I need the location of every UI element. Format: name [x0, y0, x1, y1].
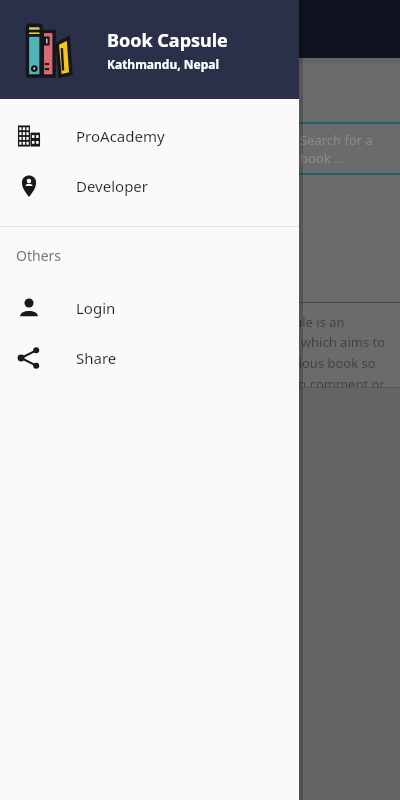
- other: ProAcademy: [17, 124, 41, 148]
- other: Share: [17, 346, 41, 370]
- staticText: Share: [76, 348, 117, 368]
- button[interactable]: Share: [0, 333, 299, 383]
- button[interactable]: ProAcademy: [0, 111, 299, 161]
- staticText: Developer: [76, 176, 149, 196]
- staticText: Search for a book …: [300, 131, 400, 167]
- staticText: Book Capsule: [107, 28, 228, 53]
- button[interactable]: Login: [0, 283, 299, 333]
- other: Developer: [17, 174, 41, 198]
- button[interactable]: Developer: [0, 161, 299, 211]
- staticText: Book Capsule is an application which aim…: [230, 313, 400, 387]
- staticText: Kathmandu, Nepal: [107, 56, 220, 72]
- staticText: Others: [16, 246, 62, 265]
- staticText: Login: [76, 298, 116, 318]
- staticText: ProAcademy: [76, 126, 165, 146]
- other: Login: [17, 296, 41, 320]
